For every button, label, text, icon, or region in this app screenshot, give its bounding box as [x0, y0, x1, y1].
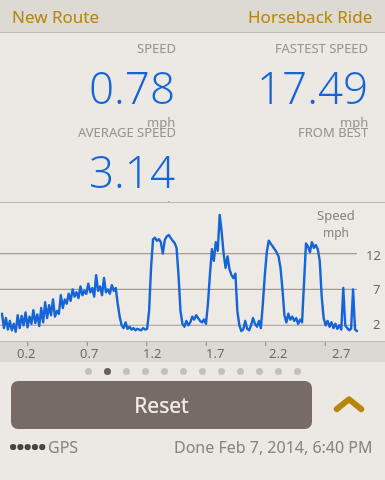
staticText: Done Feb 7, 2014, 6:40 PM [174, 436, 373, 458]
staticText: GPS [48, 436, 79, 458]
staticText: 0.7 [80, 344, 99, 362]
staticText: 2 [373, 315, 381, 333]
staticText: 1.2 [143, 344, 162, 362]
staticText: 12 [366, 246, 381, 264]
staticText: Reset [134, 391, 189, 420]
staticText: 7 [373, 280, 381, 298]
staticText: New Route [12, 5, 100, 28]
button[interactable]: SPEED [0, 33, 192, 135]
staticText: Horseback Ride [248, 5, 373, 28]
staticText: Speed [317, 206, 355, 224]
button[interactable]: New Route [0, 1, 112, 32]
staticText: 17.49 [257, 57, 369, 117]
staticText: 2.2 [269, 344, 288, 362]
staticText: mph [340, 113, 369, 131]
button[interactable]: FROM BEST [192, 117, 385, 141]
button[interactable]: AVERAGE SPEED [0, 117, 192, 219]
staticText: mph [323, 224, 350, 240]
button[interactable]: FASTEST SPEED [192, 33, 385, 135]
button[interactable]: Reset [11, 381, 312, 429]
staticText: 0.2 [17, 344, 36, 362]
staticText: FASTEST SPEED [275, 39, 369, 57]
button[interactable]: Speed [0, 202, 385, 341]
staticText: mph [147, 113, 176, 131]
staticText: 0.78 [89, 57, 176, 117]
staticText: 1.7 [206, 344, 225, 362]
staticText: mph [147, 197, 176, 215]
staticText: FROM BEST [298, 123, 369, 141]
staticText: AVERAGE SPEED [78, 123, 176, 141]
button[interactable]: Horseback Ride [236, 1, 385, 32]
staticText: 3.14 [89, 141, 176, 201]
staticText: 2.7 [332, 344, 351, 362]
button[interactable]: Expand [312, 381, 385, 429]
button[interactable]: GPS [10, 436, 79, 458]
staticText: SPEED [137, 39, 176, 57]
